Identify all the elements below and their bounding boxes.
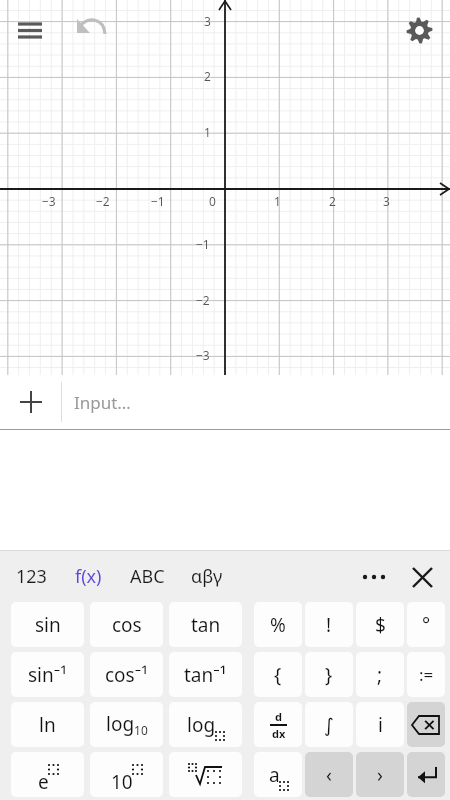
- button[interactable]: ABC: [128, 560, 167, 593]
- button[interactable]: More options: [356, 559, 392, 595]
- staticText: tan: [191, 612, 221, 638]
- staticText: sin: [35, 612, 61, 638]
- button[interactable]: f(x): [73, 560, 104, 593]
- staticText: −3: [42, 193, 56, 209]
- staticText: Input…: [74, 391, 131, 414]
- staticText: log: [187, 712, 216, 738]
- button[interactable]: {: [254, 652, 302, 697]
- button[interactable]: Menu: [10, 14, 50, 46]
- staticText: °: [422, 612, 431, 638]
- staticText: i: [378, 712, 383, 738]
- button[interactable]: cos⁻¹: [90, 652, 163, 697]
- button[interactable]: [169, 752, 242, 797]
- staticText: ›: [377, 762, 383, 788]
- staticText: {: [274, 662, 282, 688]
- button[interactable]: Move right: [356, 752, 404, 797]
- staticText: a: [269, 762, 280, 788]
- staticText: ∫: [324, 714, 334, 736]
- button[interactable]: Move left: [305, 752, 353, 797]
- button[interactable]: ln: [11, 702, 84, 747]
- button[interactable]: 10: [90, 752, 163, 797]
- staticText: !: [326, 612, 332, 638]
- staticText: −2: [196, 292, 210, 308]
- button[interactable]: %: [254, 602, 302, 647]
- staticText: cos⁻¹: [105, 662, 148, 688]
- staticText: %: [270, 612, 286, 638]
- button[interactable]: Settings: [404, 15, 435, 46]
- staticText: 2: [204, 68, 211, 84]
- button[interactable]: Add input: [0, 375, 61, 429]
- button[interactable]: Undo: [74, 14, 110, 46]
- button[interactable]: }: [305, 652, 353, 697]
- staticText: 0: [209, 193, 216, 209]
- staticText: log10: [106, 711, 148, 739]
- staticText: 2: [329, 193, 336, 209]
- staticText: −1: [151, 193, 165, 209]
- button[interactable]: Backspace: [407, 702, 445, 747]
- button[interactable]: tan: [169, 602, 242, 647]
- staticText: $: [375, 612, 386, 638]
- button[interactable]: 123: [14, 560, 49, 593]
- button[interactable]: ;: [356, 652, 404, 697]
- staticText: :=: [419, 663, 434, 686]
- staticText: ln: [39, 712, 56, 738]
- button[interactable]: log10: [90, 702, 163, 747]
- staticText: 1: [204, 124, 211, 140]
- staticText: cos: [112, 612, 142, 638]
- button[interactable]: sin: [11, 602, 84, 647]
- staticText: 123: [16, 564, 47, 589]
- staticText: sin⁻¹: [28, 662, 67, 688]
- button[interactable]: Close keyboard: [404, 559, 440, 595]
- button[interactable]: tan⁻¹: [169, 652, 242, 697]
- button[interactable]: $: [356, 602, 404, 647]
- staticText: d: [275, 709, 282, 724]
- button[interactable]: sin⁻¹: [11, 652, 84, 697]
- staticText: −2: [96, 193, 110, 209]
- button[interactable]: αβγ: [189, 560, 225, 593]
- button[interactable]: cos: [90, 602, 163, 647]
- staticText: f(x): [75, 564, 102, 589]
- button[interactable]: Input…: [74, 375, 450, 429]
- staticText: }: [325, 662, 333, 688]
- button[interactable]: e: [11, 752, 84, 797]
- staticText: −3: [196, 347, 210, 363]
- staticText: tan⁻¹: [184, 662, 227, 688]
- button[interactable]: log: [169, 702, 242, 747]
- staticText: ABC: [130, 564, 165, 589]
- staticText: dx: [272, 726, 286, 741]
- button[interactable]: a: [254, 752, 302, 797]
- button[interactable]: !: [305, 602, 353, 647]
- button[interactable]: i: [356, 702, 404, 747]
- button[interactable]: Enter: [407, 752, 445, 797]
- staticText: e: [38, 769, 49, 795]
- staticText: −1: [196, 236, 210, 252]
- staticText: 3: [383, 193, 390, 209]
- staticText: ‹: [326, 762, 332, 788]
- staticText: ;: [377, 662, 383, 688]
- staticText: 10: [111, 769, 133, 795]
- button[interactable]: :=: [407, 652, 445, 697]
- staticText: αβγ: [191, 564, 223, 589]
- button[interactable]: ∫: [305, 702, 353, 747]
- staticText: 3: [204, 13, 211, 29]
- button[interactable]: °: [407, 602, 445, 647]
- staticText: 1: [274, 193, 281, 209]
- button[interactable]: d: [254, 702, 302, 747]
